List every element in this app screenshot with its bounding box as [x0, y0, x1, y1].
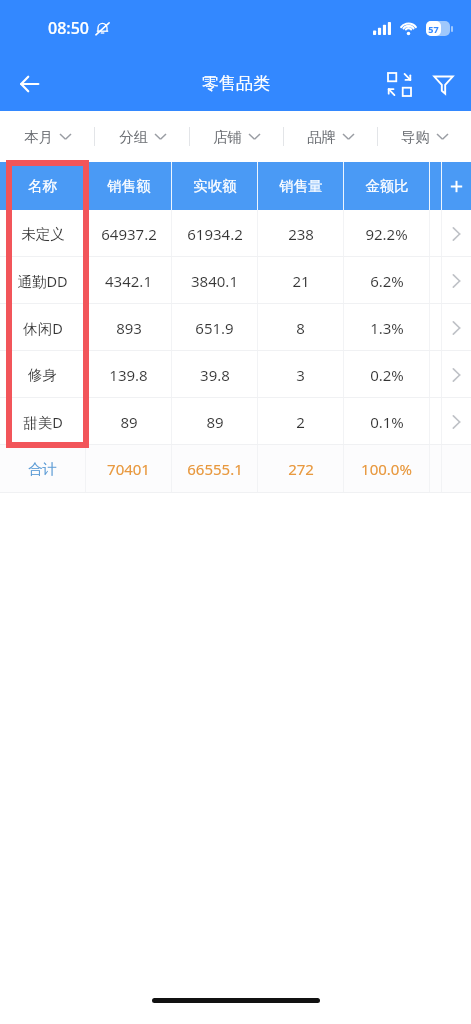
staticText: 57 — [428, 23, 439, 35]
staticText: 店铺 — [213, 128, 242, 146]
button[interactable]: 甜美D — [0, 398, 471, 445]
button[interactable]: Back — [8, 62, 52, 106]
button[interactable]: 修身 — [0, 351, 471, 398]
staticText: 89 — [206, 412, 224, 432]
button[interactable]: 未定义 — [0, 210, 471, 257]
button[interactable]: 店铺 — [190, 111, 283, 162]
staticText: 08:50 — [48, 17, 89, 39]
staticText: 8 — [296, 318, 305, 338]
staticText: 销售额 — [107, 177, 151, 195]
staticText: 6.2% — [370, 271, 404, 291]
staticText: 3840.1 — [191, 271, 238, 291]
staticText: 39.8 — [200, 365, 230, 385]
staticText: 零售品类 — [202, 73, 270, 94]
staticText: 未定义 — [21, 225, 65, 243]
staticText: 66555.1 — [187, 459, 243, 479]
staticText: 本月 — [24, 128, 53, 146]
button[interactable]: Filter — [421, 62, 465, 106]
staticText: 61934.2 — [187, 224, 243, 244]
staticText: 139.8 — [109, 365, 148, 385]
button[interactable]: 导购 — [378, 111, 471, 162]
staticText: 0.1% — [370, 412, 404, 432]
button[interactable]: 金额比 — [344, 162, 429, 210]
staticText: 通勤DD — [17, 271, 68, 291]
staticText: 品牌 — [307, 128, 336, 146]
button[interactable]: Add column — [442, 162, 471, 210]
staticText: 导购 — [401, 128, 430, 146]
staticText: 70401 — [107, 459, 150, 479]
staticText: 272 — [288, 459, 314, 479]
staticText: 651.9 — [195, 318, 234, 338]
button[interactable]: 销售量 — [258, 162, 343, 210]
staticText: 名称 — [28, 177, 57, 195]
staticText: 甜美D — [23, 412, 63, 432]
button[interactable]: 本月 — [0, 111, 94, 162]
button[interactable]: 名称 — [0, 162, 85, 210]
button[interactable]: Transpose table — [377, 62, 421, 106]
staticText: 4342.1 — [105, 271, 152, 291]
button[interactable]: 通勤DD — [0, 257, 471, 304]
staticText: 0.2% — [370, 365, 404, 385]
staticText: 修身 — [28, 366, 57, 384]
button[interactable]: 休闲D — [0, 304, 471, 351]
staticText: 3 — [296, 365, 305, 385]
button[interactable]: 实收额 — [172, 162, 257, 210]
staticText: 89 — [120, 412, 138, 432]
staticText: 2 — [296, 412, 305, 432]
staticText: 100.0% — [361, 459, 412, 479]
staticText: 238 — [288, 224, 314, 244]
staticText: 销售量 — [279, 177, 323, 195]
staticText: 实收额 — [193, 177, 237, 195]
staticText: 1.3% — [370, 318, 404, 338]
staticText: 金额比 — [365, 177, 409, 195]
staticText: 92.2% — [365, 224, 408, 244]
staticText: 分组 — [119, 128, 148, 146]
button[interactable]: 品牌 — [284, 111, 377, 162]
button[interactable]: 销售额 — [86, 162, 171, 210]
staticText: 64937.2 — [101, 224, 157, 244]
staticText: 休闲D — [23, 318, 63, 338]
staticText: 21 — [292, 271, 310, 291]
button[interactable]: 分组 — [95, 111, 189, 162]
staticText: 合计 — [28, 460, 57, 478]
staticText: 893 — [116, 318, 142, 338]
